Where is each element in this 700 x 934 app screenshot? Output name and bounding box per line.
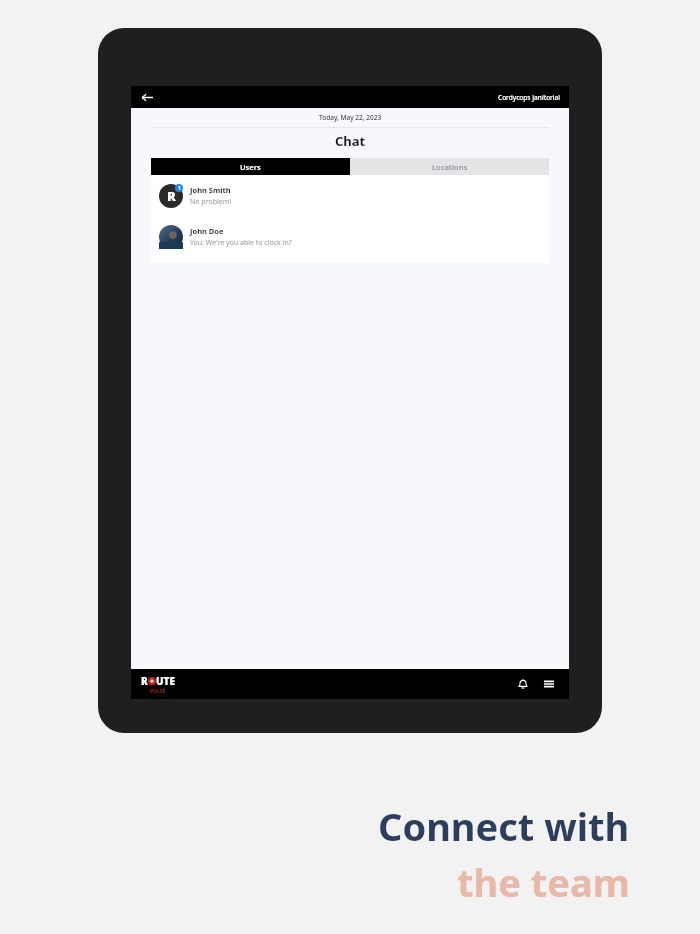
staticText: Cordycops Janitorial [498, 93, 561, 102]
staticText: the team [457, 856, 630, 908]
staticText: R [167, 187, 176, 205]
button[interactable]: Menu [539, 674, 559, 694]
button[interactable]: Back [137, 87, 157, 107]
button[interactable]: Users [151, 158, 350, 175]
staticText: UTE [156, 674, 175, 688]
staticText: Connect with [378, 800, 630, 852]
button[interactable]: Notifications [513, 674, 533, 694]
staticText: No problem! [190, 197, 232, 207]
button[interactable]: John Doe [151, 216, 549, 257]
staticText: 1 [178, 185, 181, 192]
staticText: PULSE [150, 688, 166, 695]
staticText: R [141, 674, 148, 688]
staticText: John Doe [190, 226, 224, 236]
staticText: Users [240, 162, 261, 172]
button[interactable]: R [151, 175, 549, 216]
staticText: John Smith [190, 185, 231, 195]
staticText: You: We're you able to clock in? [190, 238, 292, 248]
staticText: Chat [335, 132, 366, 150]
staticText: Locations [432, 162, 468, 172]
staticText: Today, May 22, 2023 [319, 113, 382, 122]
button[interactable]: Locations [350, 158, 549, 175]
